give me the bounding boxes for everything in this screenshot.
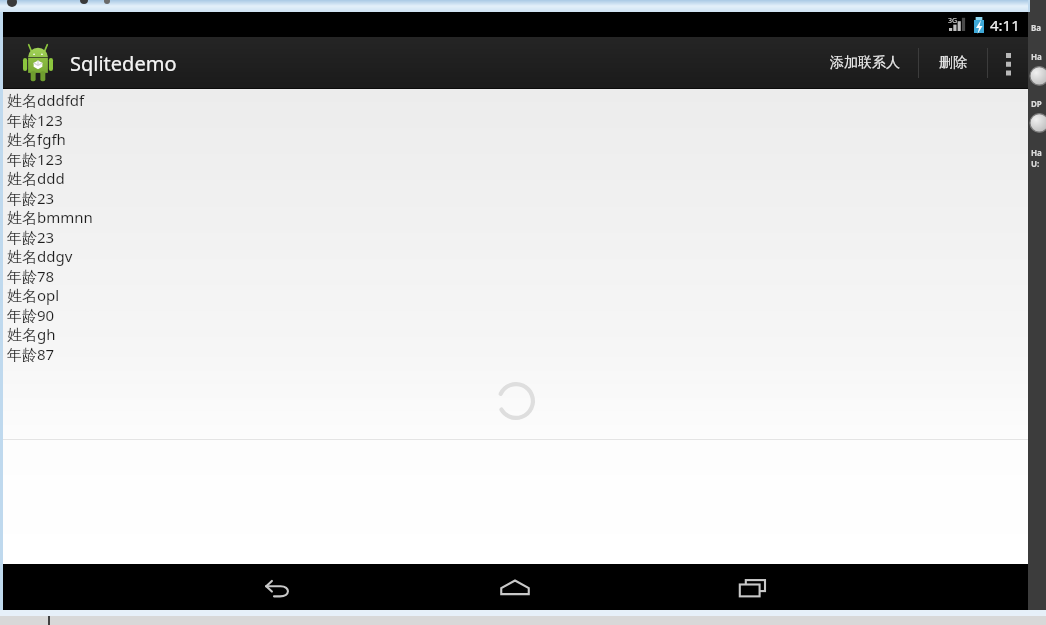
button[interactable]: 删除 <box>919 37 987 89</box>
staticText: 年龄23 <box>7 188 55 206</box>
staticText: DP <box>1031 98 1042 109</box>
staticText: Ha <box>1031 147 1042 158</box>
button[interactable]: Sqlitedemo <box>19 44 177 82</box>
staticText: 年龄23 <box>7 227 55 245</box>
staticText: 删除 <box>939 54 967 72</box>
staticText: 年龄123 <box>7 110 63 128</box>
staticText: Ha <box>1031 51 1042 62</box>
button[interactable]: 姓名fgfh <box>3 128 1028 167</box>
button[interactable]: 姓名opl <box>3 284 1028 323</box>
button[interactable]: 姓名bmmnn <box>3 206 1028 245</box>
staticText: 年龄90 <box>7 305 55 323</box>
staticText: 年龄87 <box>7 344 55 362</box>
button[interactable]: More options <box>988 37 1028 89</box>
staticText: 姓名ddd <box>7 168 65 188</box>
staticText: Ba <box>1031 22 1042 33</box>
staticText: 姓名opl <box>7 285 60 305</box>
button[interactable]: 姓名ddd <box>3 167 1028 206</box>
button[interactable]: 姓名gh <box>3 323 1028 362</box>
button[interactable]: Recent apps <box>719 564 787 612</box>
staticText: 姓名ddgv <box>7 246 73 266</box>
staticText: 年龄78 <box>7 266 55 284</box>
staticText: 3G <box>948 16 958 26</box>
staticText: 姓名fgfh <box>7 129 66 149</box>
staticText: 姓名dddfdf <box>7 90 85 110</box>
staticText: U: <box>1031 158 1040 169</box>
button[interactable]: Back <box>243 564 311 612</box>
staticText: 4:11 <box>990 15 1020 35</box>
staticText: 姓名gh <box>7 324 56 344</box>
button[interactable]: Home <box>481 564 549 612</box>
button[interactable]: 添加联系人 <box>812 37 918 89</box>
staticText: 添加联系人 <box>830 54 900 72</box>
staticText: 姓名bmmnn <box>7 207 93 227</box>
staticText: 年龄123 <box>7 149 63 167</box>
button[interactable]: 姓名ddgv <box>3 245 1028 284</box>
button[interactable]: 姓名dddfdf <box>3 89 1028 128</box>
staticText: Sqlitedemo <box>70 50 177 77</box>
